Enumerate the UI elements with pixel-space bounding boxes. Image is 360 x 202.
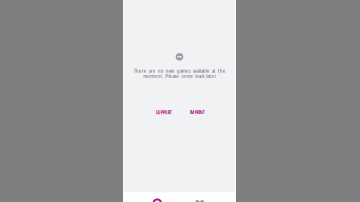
button[interactable]: SUPPORT bbox=[152, 108, 176, 116]
staticText: There are no new games available at the … bbox=[133, 68, 225, 79]
button[interactable]: Favourites bbox=[188, 199, 212, 202]
button[interactable]: IMPRINT bbox=[185, 108, 209, 116]
staticText: SUPPORT bbox=[156, 110, 172, 115]
button[interactable]: Games bbox=[145, 198, 169, 202]
staticText: IMPRINT bbox=[190, 110, 205, 115]
